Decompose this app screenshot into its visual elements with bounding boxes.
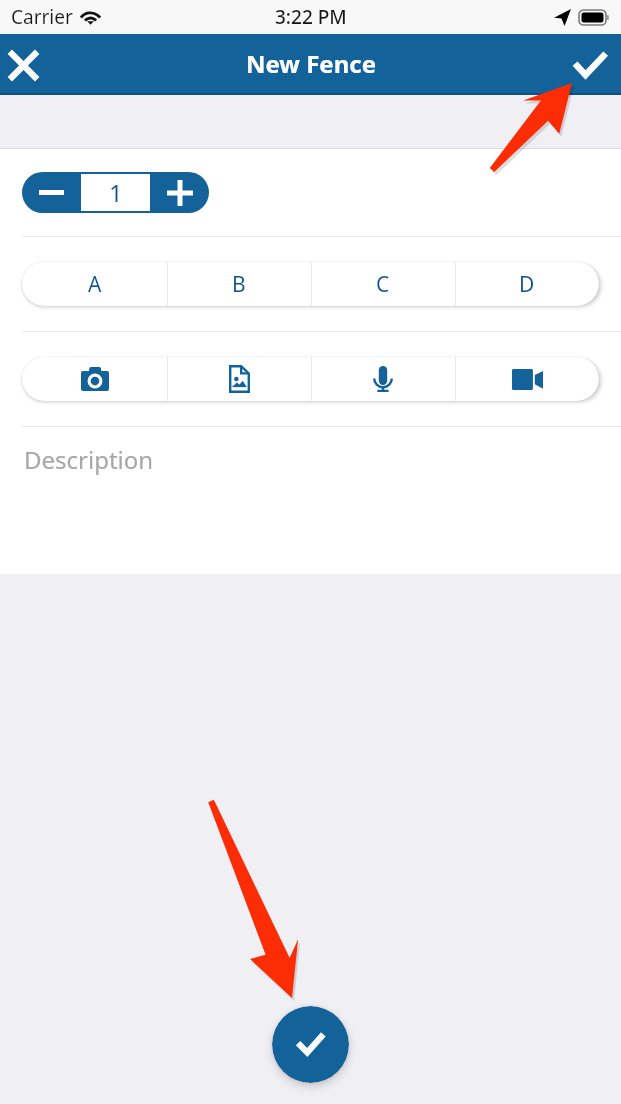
- button[interactable]: C: [311, 262, 455, 306]
- button[interactable]: Close: [1, 43, 45, 87]
- staticText: A: [88, 270, 102, 299]
- staticText: Carrier: [11, 4, 73, 30]
- button[interactable]: Confirm: [272, 1006, 349, 1083]
- button[interactable]: Record audio: [311, 357, 455, 401]
- button[interactable]: Camera: [22, 357, 167, 401]
- staticText: B: [232, 270, 246, 299]
- staticText: 3:22 PM: [275, 4, 347, 30]
- button[interactable]: B: [167, 262, 311, 306]
- button[interactable]: D: [455, 262, 599, 306]
- button[interactable]: A: [22, 262, 167, 306]
- button[interactable]: Done: [566, 41, 614, 89]
- staticText: New Fence: [246, 47, 376, 80]
- staticText: D: [519, 270, 535, 299]
- button[interactable]: Attach file: [167, 357, 311, 401]
- staticText: 1: [109, 176, 123, 209]
- staticText: C: [376, 270, 390, 299]
- button[interactable]: Increase: [150, 172, 209, 213]
- staticText: Description: [24, 443, 154, 476]
- button[interactable]: Record video: [455, 357, 599, 401]
- button[interactable]: Decrease: [22, 172, 81, 213]
